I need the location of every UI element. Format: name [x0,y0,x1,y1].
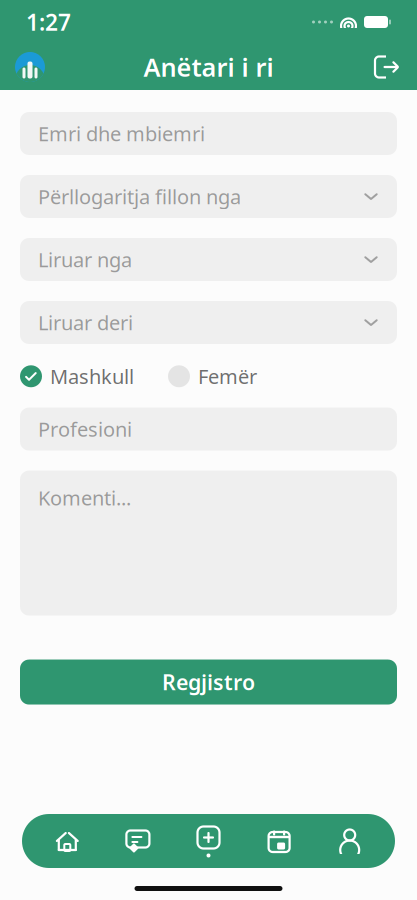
staticText: Profesioni [38,416,132,442]
button[interactable]: Femër [168,363,257,390]
staticText: Anëtari i ri [143,50,273,84]
button[interactable]: Log out [365,45,409,89]
button[interactable]: Regjistro [20,660,397,705]
staticText: Regjistro [162,668,255,696]
button[interactable]: Add new member [173,824,244,857]
staticText: Përllogaritja fillon nga [38,183,241,210]
staticText: Liruar nga [38,246,132,273]
button[interactable]: Calendar [244,828,314,854]
button[interactable]: Home [8,45,52,89]
staticText: Emri dhe mbiemri [38,120,205,147]
button[interactable]: Profile [314,828,385,854]
staticText: Femër [198,363,257,390]
staticText: Liruar deri [38,309,133,336]
button[interactable]: Home [32,828,103,854]
button[interactable]: Mashkull [20,363,134,390]
staticText: 1:27 [26,7,71,37]
staticText: Komenti... [38,485,131,511]
button[interactable]: Messages [103,828,173,854]
staticText: Mashkull [50,363,134,390]
